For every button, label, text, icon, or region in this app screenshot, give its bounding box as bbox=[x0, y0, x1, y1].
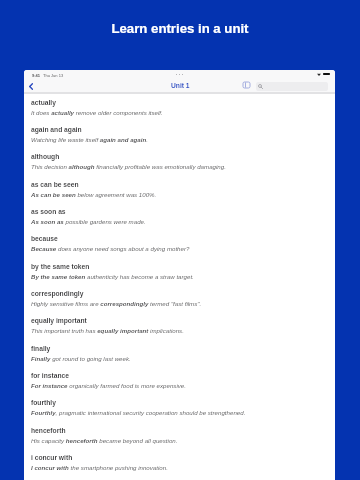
button[interactable]: Show sidebar bbox=[241, 79, 252, 90]
button[interactable]: i concur with bbox=[31, 454, 335, 480]
button[interactable]: although bbox=[31, 153, 335, 180]
button[interactable]: by the same token bbox=[31, 263, 335, 290]
staticText: Because does anyone need songs about a d… bbox=[31, 245, 190, 252]
staticText: correspondingly bbox=[31, 290, 84, 297]
button[interactable]: fourthly bbox=[31, 399, 335, 426]
staticText: By the same token authenticity has becom… bbox=[31, 273, 194, 280]
staticText: by the same token bbox=[31, 263, 90, 270]
staticText: for instance bbox=[31, 372, 69, 379]
button[interactable]: equally important bbox=[31, 317, 335, 344]
staticText: i concur with bbox=[31, 454, 73, 461]
staticText: Unit 1 bbox=[171, 82, 190, 89]
button[interactable]: actually bbox=[31, 99, 335, 126]
button[interactable]: Search bbox=[256, 82, 328, 91]
button[interactable]: again and again bbox=[31, 126, 335, 153]
staticText: I concur with the smartphone pushing inn… bbox=[31, 464, 168, 471]
staticText: This decision although financially profi… bbox=[31, 163, 226, 170]
staticText: Thu Jun 13 bbox=[43, 73, 64, 78]
button[interactable]: as soon as bbox=[31, 208, 335, 235]
staticText: For instance organically farmed food is … bbox=[31, 382, 186, 389]
staticText: fourthly bbox=[31, 399, 56, 406]
staticText: 9:41 bbox=[32, 73, 41, 78]
staticText: because bbox=[31, 235, 58, 242]
button[interactable]: Back bbox=[25, 80, 37, 92]
button[interactable]: for instance bbox=[31, 372, 335, 399]
staticText: Highly sensitive films are corresponding… bbox=[31, 300, 202, 307]
staticText: again and again bbox=[31, 126, 82, 133]
staticText: Learn entries in a unit bbox=[0, 21, 360, 36]
staticText: finally bbox=[31, 345, 51, 352]
button[interactable]: as can be seen bbox=[31, 181, 335, 208]
staticText: As soon as possible gardens were made. bbox=[31, 218, 146, 225]
staticText: actually bbox=[31, 99, 56, 106]
staticText: As can be seen below agreement was 100%. bbox=[31, 191, 157, 198]
staticText: Finally got round to going last week. bbox=[31, 355, 131, 362]
staticText: It does actually remove older components… bbox=[31, 109, 163, 116]
staticText: as can be seen bbox=[31, 181, 79, 188]
staticText: as soon as bbox=[31, 208, 66, 215]
staticText: Fourthly, pragmatic international securi… bbox=[31, 409, 246, 416]
button[interactable]: henceforth bbox=[31, 427, 335, 454]
button[interactable]: finally bbox=[31, 345, 335, 372]
button[interactable]: because bbox=[31, 235, 335, 262]
staticText: This important truth has equally importa… bbox=[31, 327, 184, 334]
staticText: henceforth bbox=[31, 427, 66, 434]
staticText: equally important bbox=[31, 317, 87, 324]
staticText: although bbox=[31, 153, 60, 160]
staticText: Watching life waste itself again and aga… bbox=[31, 136, 148, 143]
staticText: His capacity henceforth became beyond al… bbox=[31, 437, 178, 444]
button[interactable]: correspondingly bbox=[31, 290, 335, 317]
